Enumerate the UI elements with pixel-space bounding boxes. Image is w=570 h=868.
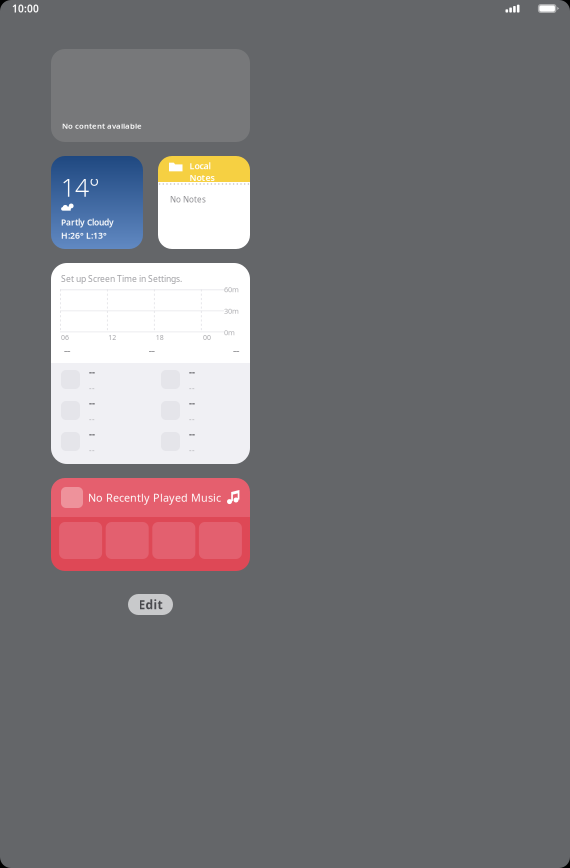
staticText: --	[89, 383, 95, 393]
staticText: --	[89, 414, 95, 424]
staticText: 60m	[224, 284, 239, 294]
staticText: --	[189, 414, 195, 424]
staticText: Local Notes	[189, 160, 214, 183]
staticText: 30m	[224, 306, 239, 316]
staticText: 18	[156, 333, 164, 342]
staticText: --	[89, 445, 95, 455]
button[interactable]: Edit	[128, 594, 173, 615]
staticText: No content available	[62, 121, 142, 131]
staticText: --	[148, 343, 154, 357]
button[interactable]: Local Notes	[158, 156, 250, 249]
staticText: Set up Screen Time in Settings.	[61, 273, 182, 284]
button[interactable]: 14°	[51, 156, 143, 249]
staticText: Edit	[138, 596, 162, 612]
staticText: 0m	[224, 327, 235, 337]
button[interactable]: No Recently Played Music	[51, 478, 250, 571]
staticText: No Notes	[170, 194, 206, 205]
staticText: --	[189, 383, 195, 393]
staticText: Partly Cloudy	[61, 216, 114, 228]
staticText: --	[64, 343, 70, 357]
staticText: --	[89, 427, 95, 440]
staticText: --	[189, 445, 195, 455]
staticText: H:26° L:13°	[61, 230, 107, 241]
staticText: No Recently Played Music	[88, 490, 221, 505]
button[interactable]: No content available	[51, 49, 250, 142]
staticText: 10:00	[12, 2, 39, 15]
button[interactable]: Set up Screen Time in Settings.	[51, 263, 250, 464]
staticText: 12	[108, 333, 116, 342]
staticText: --	[189, 427, 195, 440]
staticText: 06	[61, 333, 69, 342]
staticText: --	[189, 365, 195, 378]
staticText: --	[89, 396, 95, 409]
staticText: --	[189, 396, 195, 409]
staticText: 00	[203, 333, 211, 342]
staticText: --	[233, 343, 239, 357]
staticText: --	[89, 365, 95, 378]
staticText: 14°	[61, 171, 100, 204]
